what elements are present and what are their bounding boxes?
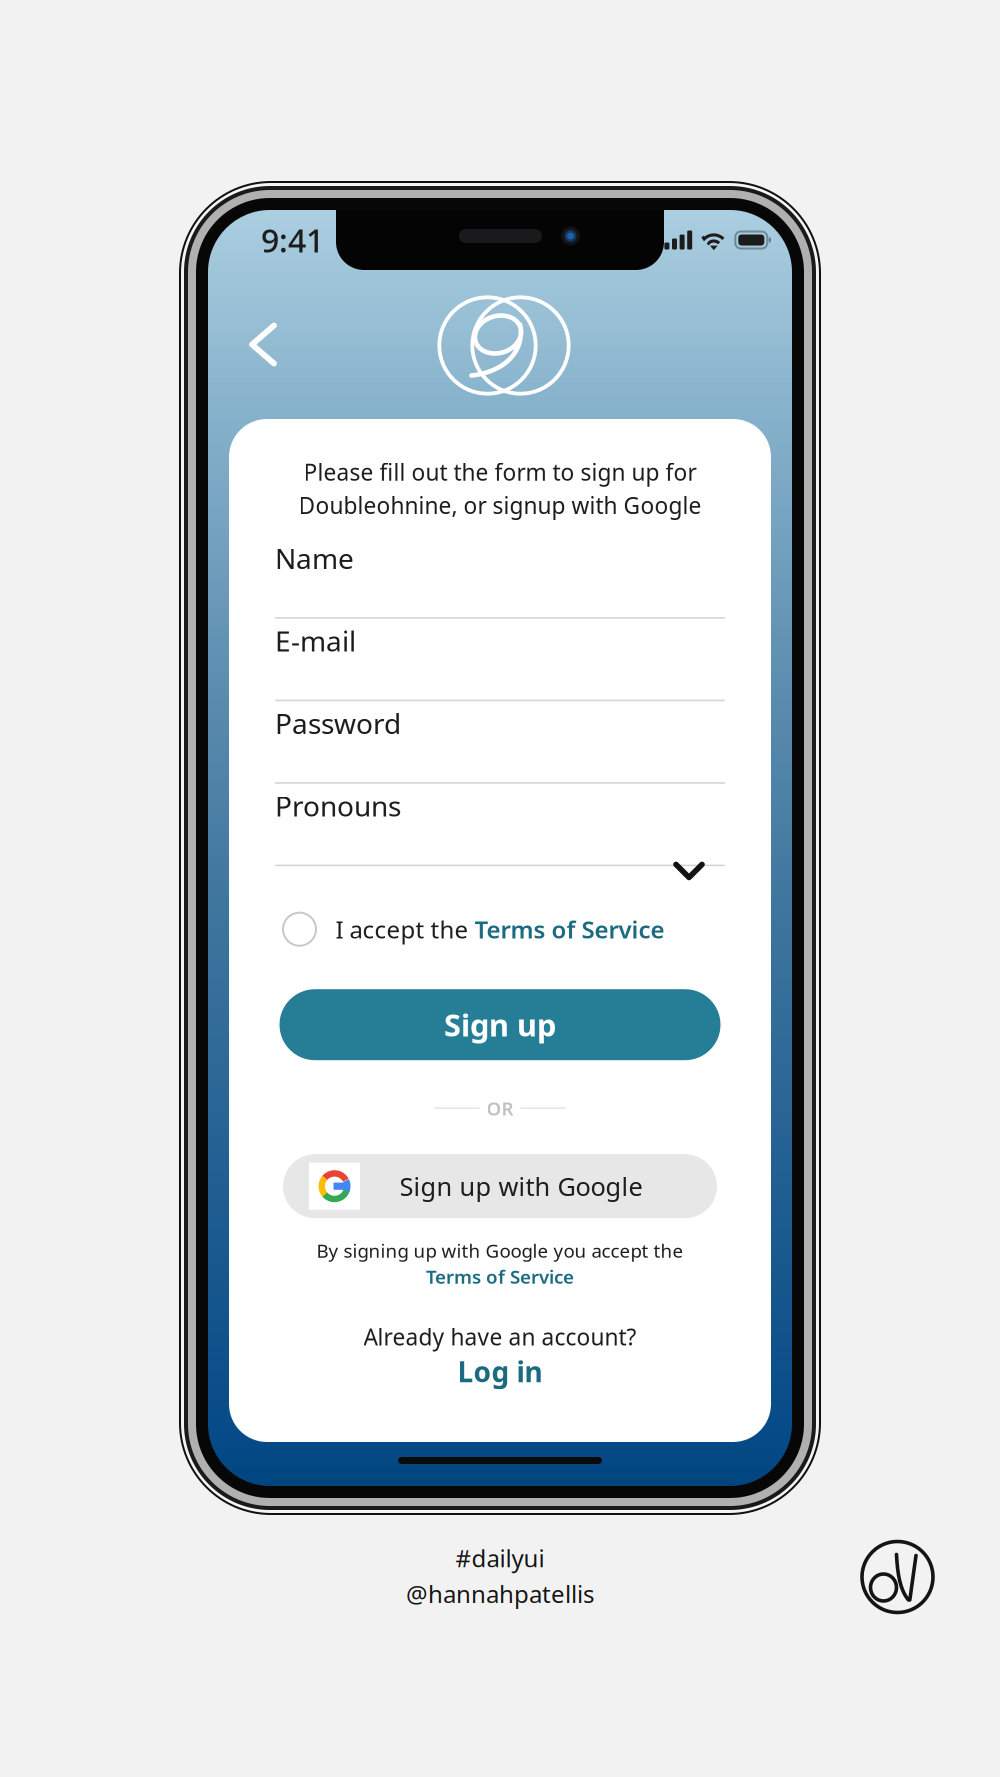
button[interactable]: Terms of Service: [426, 1264, 574, 1289]
staticText: @hannahpatellis: [406, 1578, 594, 1610]
staticText: Terms of Service: [474, 913, 664, 945]
staticText: Sign up with Google: [399, 1169, 642, 1203]
staticText: I accept the: [317, 913, 474, 945]
staticText: Pronouns: [275, 787, 401, 824]
staticText: Name: [275, 540, 354, 577]
staticText: E-mail: [275, 622, 356, 659]
staticText: Password: [275, 705, 401, 742]
staticText: 9:41: [261, 219, 324, 261]
button[interactable]: I accept the: [268, 906, 731, 952]
button[interactable]: Sign up: [279, 989, 720, 1060]
button[interactable]: Log in: [457, 1353, 542, 1390]
staticText: Doubleohnine, or signup with Google: [298, 490, 701, 520]
button[interactable]: Back: [240, 310, 284, 378]
staticText: Already have an account?: [363, 1322, 636, 1352]
staticText: By signing up with Google you accept the: [316, 1238, 683, 1263]
staticText: Sign up: [444, 1004, 556, 1045]
staticText: Please fill out the form to sign up for: [303, 457, 696, 487]
staticText: #dailyui: [455, 1542, 544, 1574]
staticText: Log in: [457, 1353, 542, 1390]
staticText: Terms of Service: [426, 1264, 574, 1289]
staticText: OR: [486, 1096, 513, 1121]
button[interactable]: Sign up with Google: [283, 1154, 717, 1218]
